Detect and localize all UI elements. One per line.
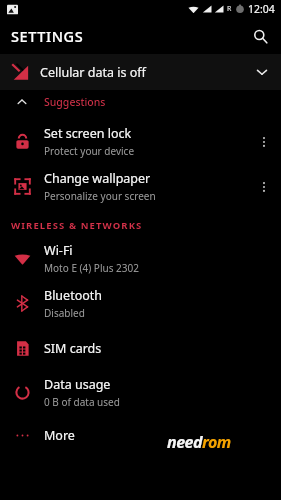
staticText: need xyxy=(167,431,202,453)
staticText: SETTINGS xyxy=(11,26,84,46)
button[interactable]: More options xyxy=(250,173,278,201)
staticText: Suggestions xyxy=(44,95,106,109)
staticText: Personalize your screen xyxy=(44,189,156,203)
staticText: Moto E (4) Plus 2302 xyxy=(44,261,139,275)
staticText: Wi-Fi xyxy=(44,242,73,259)
staticText: 12:04 xyxy=(248,2,275,16)
staticText: WIRELESS & NETWORKS xyxy=(11,219,143,232)
staticText: R xyxy=(227,4,232,14)
button[interactable]: More xyxy=(0,415,281,455)
staticText: Change wallpaper xyxy=(44,170,151,187)
staticText: Cellular data is off xyxy=(40,64,146,81)
staticText: Data usage xyxy=(44,376,111,393)
button[interactable]: Expand cellular data xyxy=(247,57,277,87)
staticText: Disabled xyxy=(44,306,85,320)
staticText: More xyxy=(44,427,75,444)
button[interactable]: SIM cards xyxy=(0,326,281,370)
button[interactable]: Set screen lock xyxy=(0,119,281,164)
button[interactable]: More options xyxy=(250,128,278,156)
button[interactable]: Change wallpaper xyxy=(0,164,281,209)
button[interactable]: Data usage xyxy=(0,370,281,415)
staticText: rom xyxy=(202,431,231,453)
button[interactable]: Suggestions xyxy=(0,90,281,114)
staticText: SIM cards xyxy=(44,340,102,357)
staticText: 0 B of data used xyxy=(44,395,120,409)
button[interactable]: Cellular data is off xyxy=(0,54,281,90)
button[interactable]: Wi-Fi xyxy=(0,236,281,281)
button[interactable]: Bluetooth xyxy=(0,281,281,326)
staticText: Protect your device xyxy=(44,144,135,158)
button[interactable]: Search settings xyxy=(243,19,277,53)
staticText: Bluetooth xyxy=(44,287,103,304)
staticText: Set screen lock xyxy=(44,125,132,142)
